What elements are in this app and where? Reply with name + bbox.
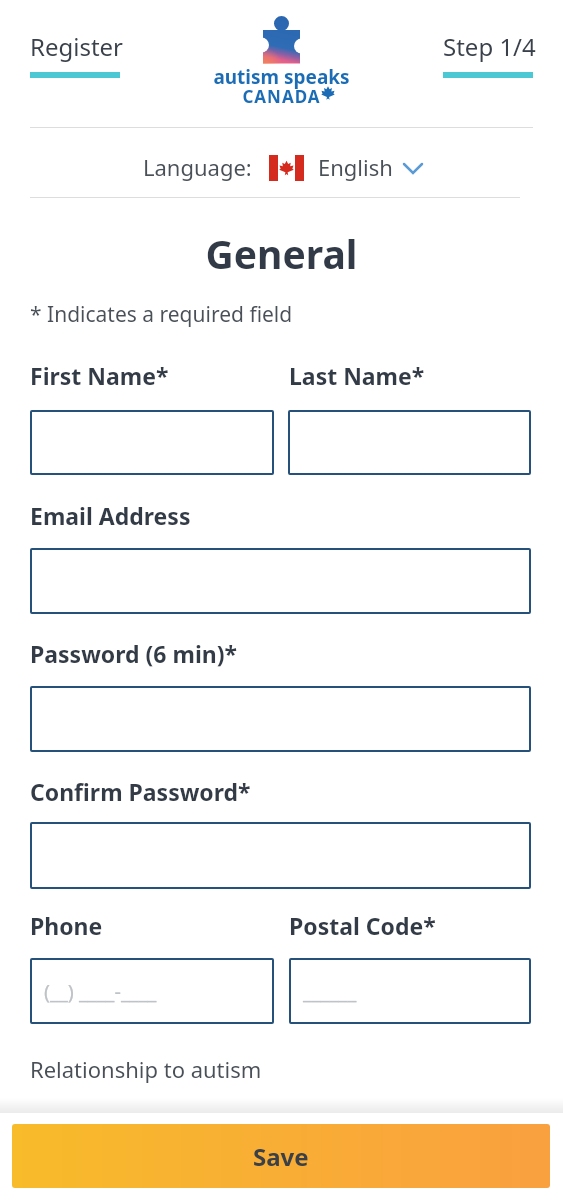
button[interactable]: Save [12,1124,550,1188]
button[interactable] [30,822,531,889]
staticText: (__) ____-____ [44,978,157,1005]
button[interactable] [269,155,304,181]
staticText: Relationship to autism [30,1054,262,1084]
staticText: General [0,227,563,280]
staticText: Step 1/4 [443,30,536,63]
staticText: Language: [143,152,252,182]
staticText: Postal Code* [289,910,436,941]
button[interactable]: English [318,152,393,182]
staticText: Email Address [30,500,191,531]
button[interactable]: Step 1/4 [443,30,536,63]
button[interactable]: ______ [289,958,531,1024]
button[interactable]: (__) ____-____ [30,958,274,1024]
staticText: CANADA [0,85,563,108]
staticText: * Indicates a required field [30,300,293,329]
staticText: English [318,152,393,182]
staticText: Last Name* [289,360,425,391]
staticText: Save [253,1140,309,1173]
staticText: ______ [303,978,357,1005]
button[interactable] [30,686,531,752]
staticText: Confirm Password* [30,776,251,807]
button[interactable] [30,410,274,475]
button[interactable]: Register [30,30,124,63]
button[interactable] [30,548,531,614]
staticText: Phone [30,910,103,941]
staticText: Password (6 min)* [30,638,238,669]
button[interactable] [288,410,531,475]
staticText: Register [30,30,124,63]
staticText: First Name* [30,360,169,391]
staticText: autism speaks [0,64,563,90]
